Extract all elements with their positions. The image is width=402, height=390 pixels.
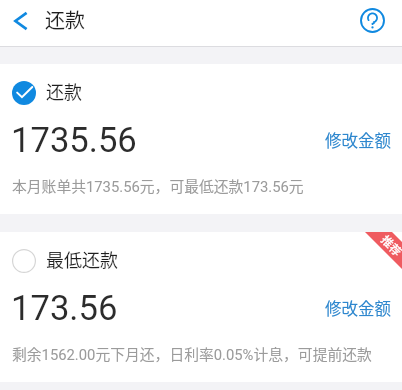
button[interactable]: 修改金额 [325, 128, 391, 152]
staticText: 最低还款 [46, 246, 118, 272]
staticText: 剩余1562.00元下月还，日利率0.05%计息，可提前还款 [12, 343, 372, 364]
button[interactable]: 最低还款 [0, 232, 402, 286]
staticText: 推荐 [377, 232, 402, 260]
staticText: 1735.56 [11, 120, 137, 161]
button[interactable]: 还款 [0, 64, 402, 118]
staticText: 173.56 [11, 288, 118, 329]
button[interactable]: 修改金额 [325, 296, 391, 320]
button[interactable]: Help [360, 8, 385, 33]
staticText: 还款 [45, 5, 85, 34]
button[interactable]: Back [11, 11, 31, 31]
staticText: 还款 [46, 78, 82, 104]
staticText: 本月账单共1735.56元，可最低还款173.56元 [12, 175, 304, 196]
